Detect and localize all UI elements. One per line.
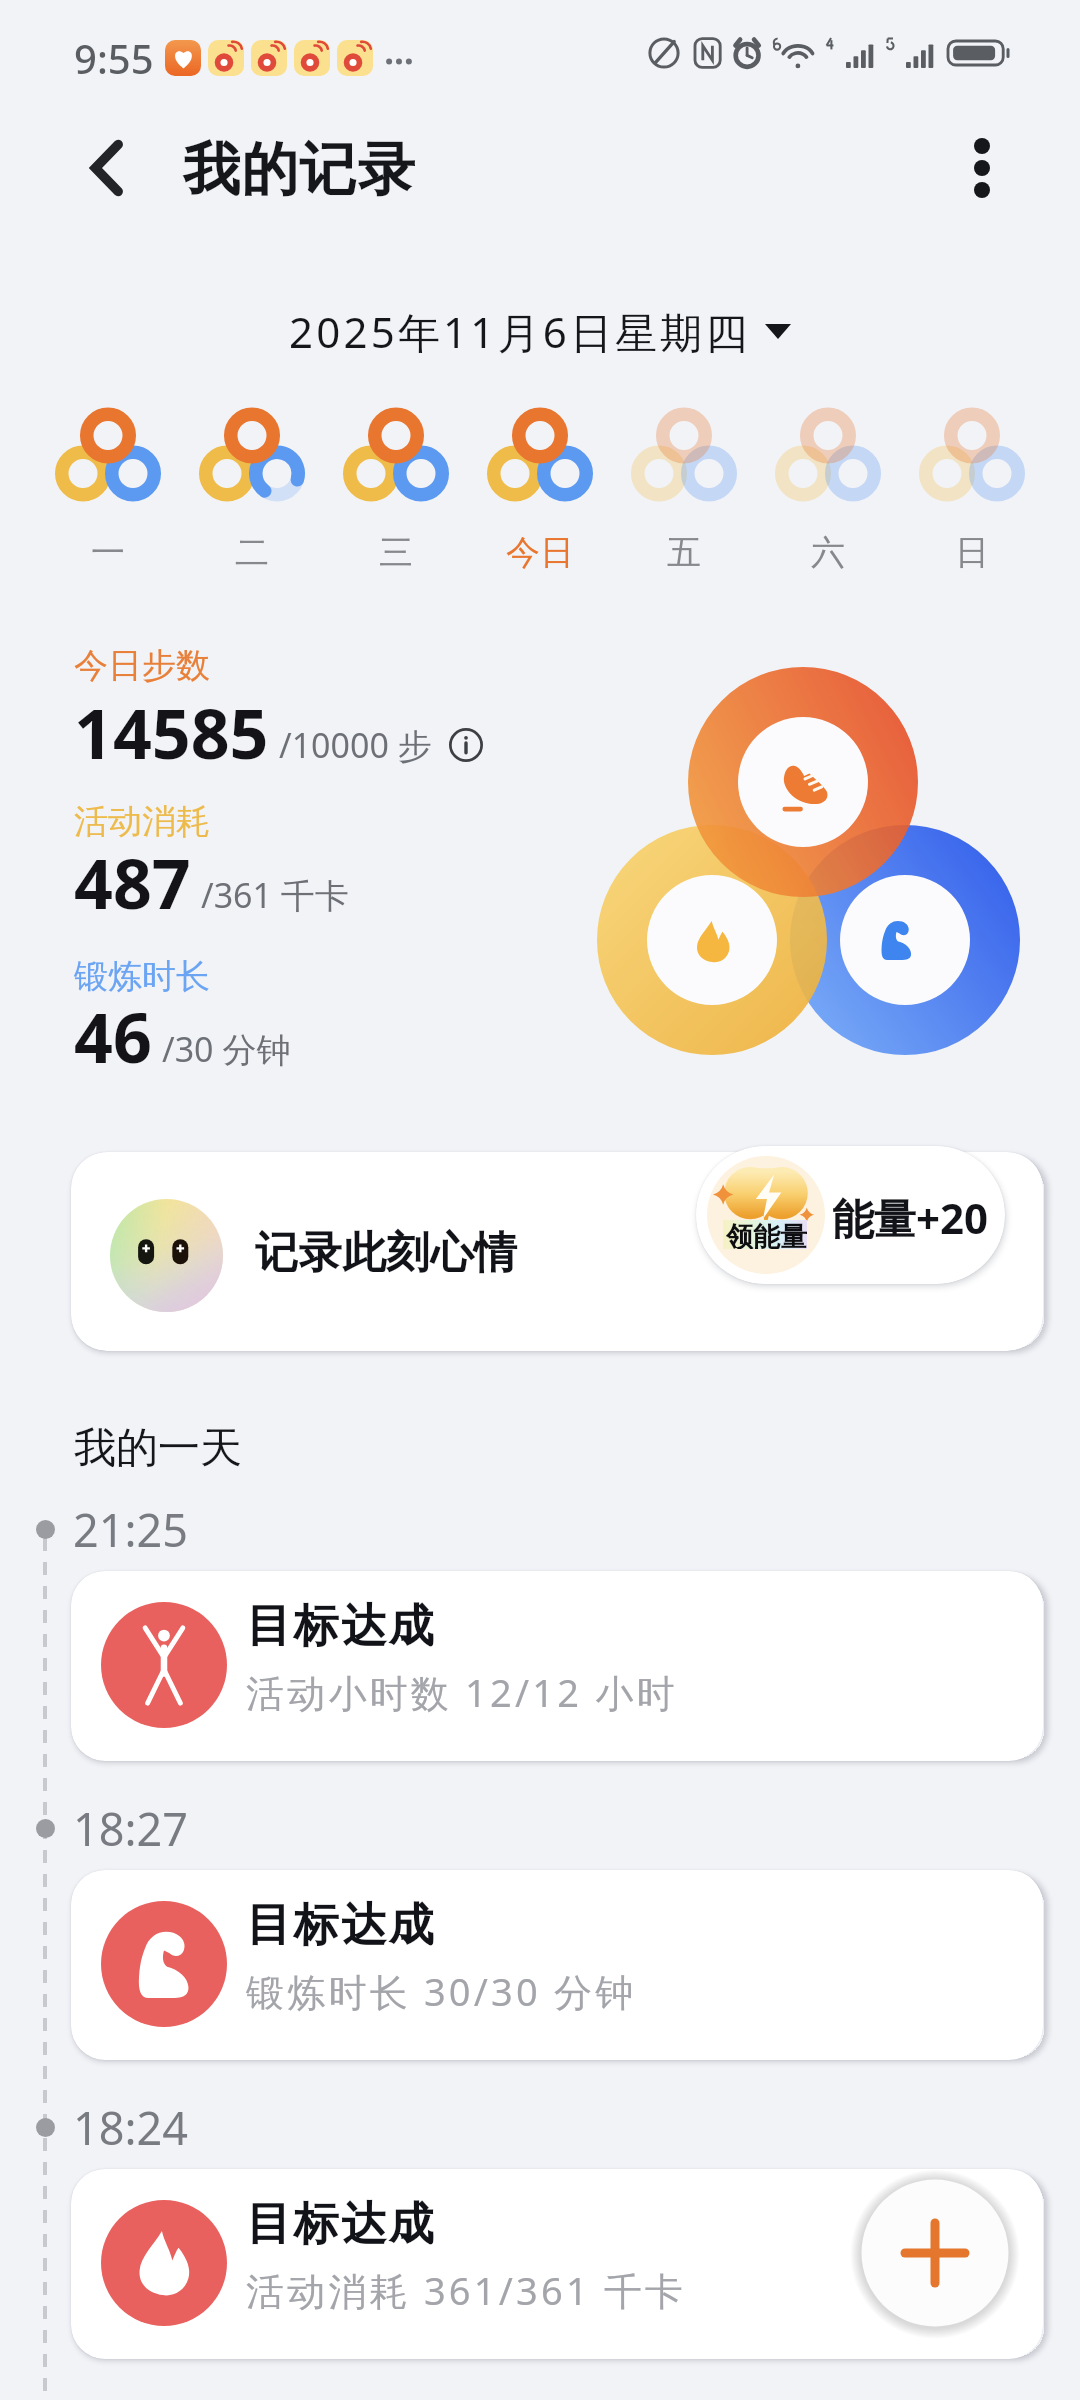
staticText: 目标达成 bbox=[246, 2196, 437, 2253]
staticText: /10000 步 bbox=[279, 722, 432, 768]
button[interactable]: 今日 bbox=[468, 408, 612, 574]
button[interactable]: 目标达成 bbox=[71, 2169, 1043, 2359]
staticText: 领能量 bbox=[726, 1220, 807, 1249]
staticText: 活动消耗 bbox=[74, 800, 210, 843]
staticText: 能量+20 bbox=[832, 1189, 989, 1246]
staticText: 我的一天 bbox=[74, 1422, 242, 1475]
staticText: 五 bbox=[667, 531, 701, 574]
button[interactable]: 目标达成 bbox=[71, 1571, 1043, 1761]
staticText: 9:55 bbox=[74, 31, 154, 85]
staticText: 18:24 bbox=[73, 2097, 189, 2158]
staticText: 46 bbox=[74, 990, 152, 1083]
staticText: 目标达成 bbox=[246, 1598, 437, 1655]
staticText: 21:25 bbox=[73, 1499, 189, 1560]
staticText: 六 bbox=[811, 531, 845, 574]
staticText: 今日 bbox=[506, 531, 574, 574]
staticText: 锻炼时长 bbox=[74, 955, 210, 998]
staticText: 锻炼时长 30/30 分钟 bbox=[246, 1965, 637, 2017]
staticText: /30 分钟 bbox=[162, 1026, 291, 1072]
button[interactable]: 目标达成 bbox=[71, 1870, 1043, 2060]
button[interactable]: 一 bbox=[36, 408, 180, 574]
staticText: 三 bbox=[379, 531, 413, 574]
staticText: 今日步数 bbox=[74, 644, 210, 687]
staticText: 活动消耗 361/361 千卡 bbox=[246, 2264, 687, 2316]
button[interactable]: 二 bbox=[180, 408, 324, 574]
button[interactable]: 三 bbox=[324, 408, 468, 574]
button[interactable]: 2025年11月6日星期四 bbox=[283, 297, 797, 366]
button[interactable]: Add record bbox=[857, 2175, 1013, 2331]
button[interactable]: Info bbox=[446, 725, 486, 765]
staticText: 记录此刻心情 bbox=[255, 1226, 518, 1280]
staticText: 14585 bbox=[74, 686, 269, 779]
button[interactable]: 六 bbox=[756, 408, 900, 574]
staticText: 活动小时数 12/12 小时 bbox=[246, 1666, 678, 1718]
staticText: 我的记录 bbox=[183, 134, 416, 206]
button[interactable]: 五 bbox=[612, 408, 756, 574]
staticText: 目标达成 bbox=[246, 1897, 437, 1954]
staticText: 一 bbox=[91, 531, 125, 574]
staticText: 2025年11月6日星期四 bbox=[289, 303, 751, 360]
button[interactable]: Back bbox=[72, 134, 140, 202]
staticText: /361 千卡 bbox=[201, 872, 349, 918]
button[interactable]: 领能量 bbox=[696, 1146, 1005, 1284]
button[interactable]: 日 bbox=[900, 408, 1044, 574]
staticText: 18:27 bbox=[73, 1798, 189, 1859]
button[interactable]: More options bbox=[948, 134, 1016, 202]
staticText: 487 bbox=[74, 836, 191, 929]
button[interactable]: 记录此刻心情 bbox=[71, 1152, 1043, 1351]
staticText: 日 bbox=[955, 531, 989, 574]
staticText: 二 bbox=[235, 531, 269, 574]
